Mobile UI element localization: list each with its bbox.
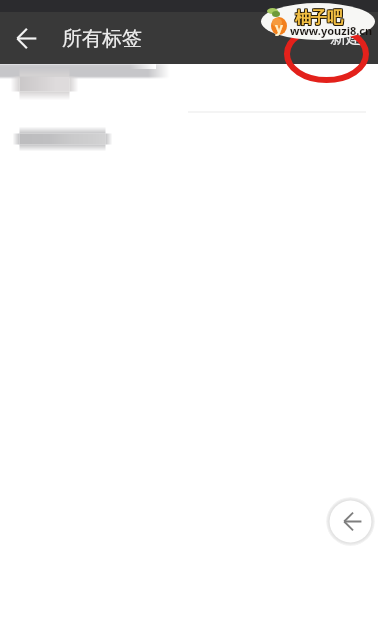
button[interactable]: Back [4,16,48,60]
staticText: 所有标签 [62,26,142,51]
staticText: 柚子吧 [295,8,343,28]
staticText: 柚子吧 [294,8,342,28]
staticText: y [275,18,283,37]
staticText: 柚子吧 [295,9,343,29]
button[interactable]: Back [326,497,375,546]
staticText: 柚子吧 [295,7,343,27]
staticText: 柚子吧 [296,9,344,29]
staticText: www.youzi8.cn [290,23,373,38]
staticText: 柚子吧 [294,7,342,27]
button[interactable]: 新建 [316,16,376,60]
staticText: 柚子吧 [294,9,342,29]
staticText: 柚子吧 [296,8,344,28]
staticText: 新建 [330,28,362,48]
staticText: 柚子吧 [296,7,344,27]
